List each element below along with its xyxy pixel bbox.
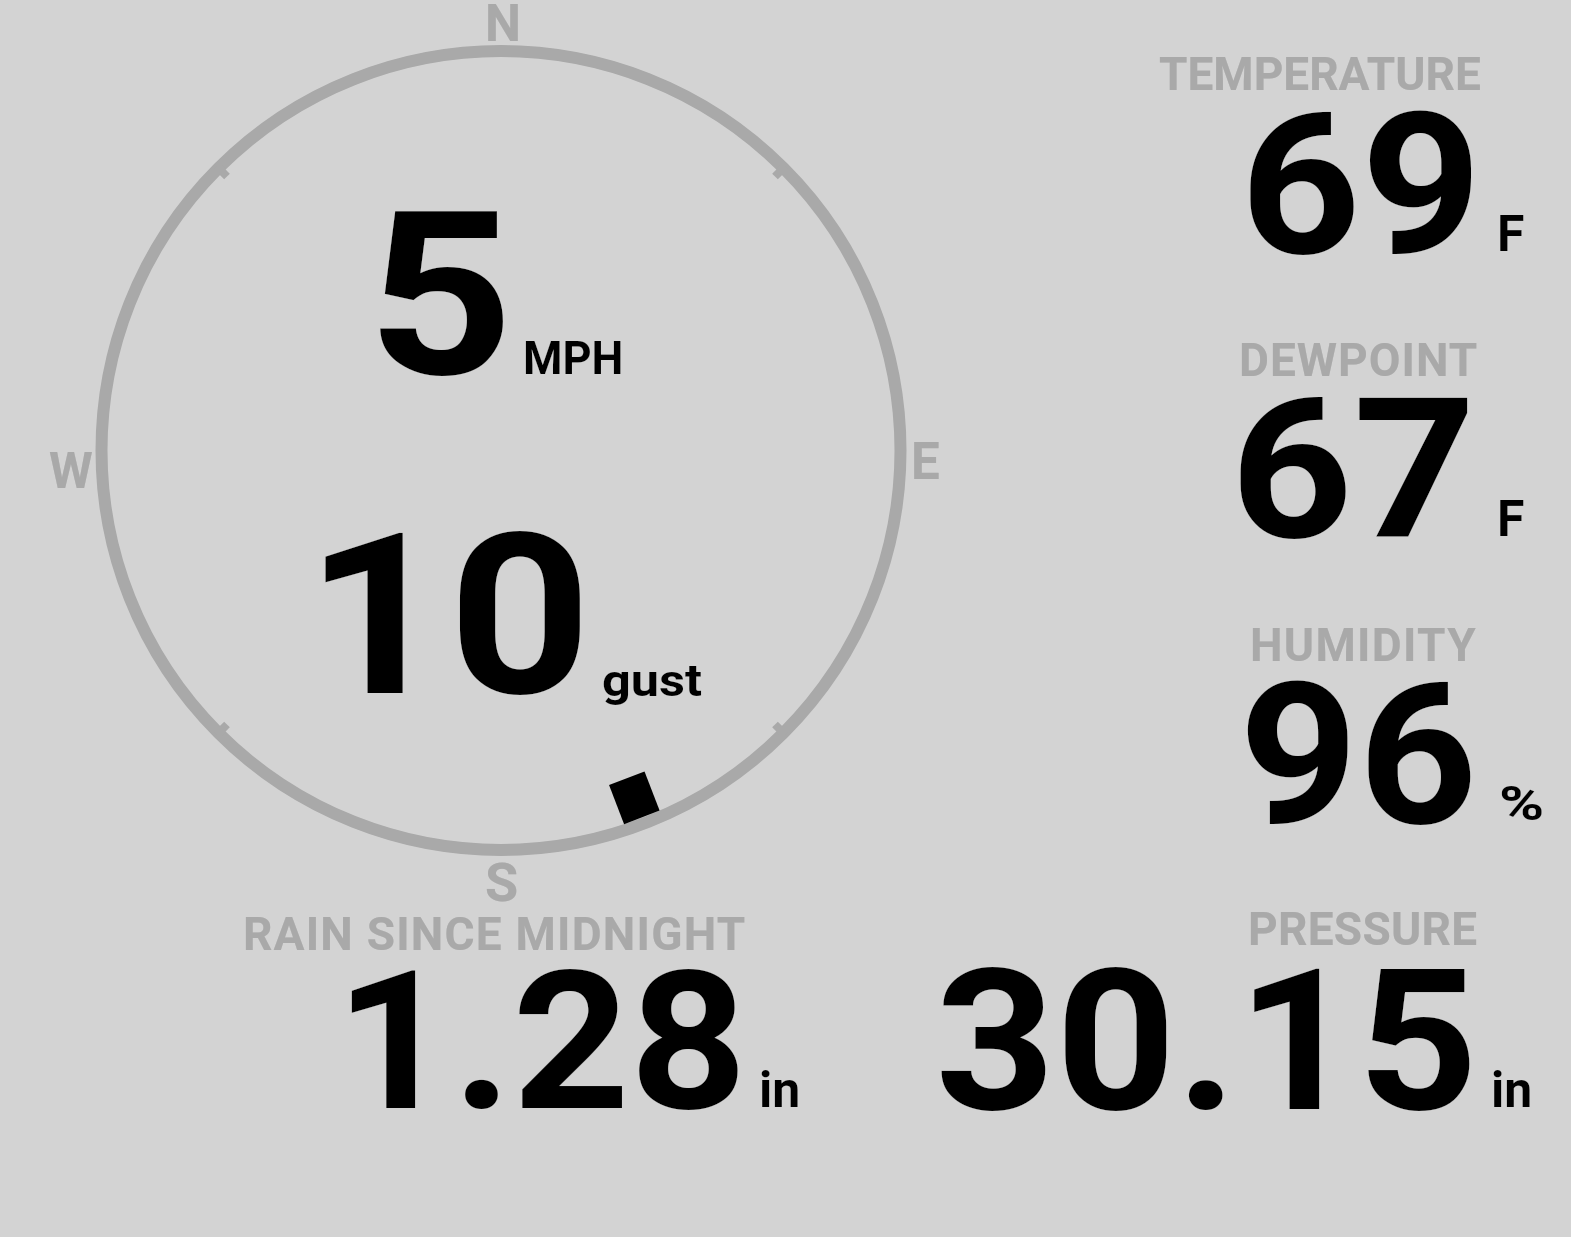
- button[interactable]: Wind speed and direction: [40, 0, 960, 910]
- staticText: in: [1491, 1061, 1533, 1120]
- staticText: DEWPOINT: [1239, 333, 1479, 387]
- staticText: in: [759, 1061, 801, 1120]
- staticText: TEMPERATURE: [1159, 47, 1481, 101]
- staticText: gust: [602, 654, 703, 707]
- staticText: E: [911, 432, 940, 492]
- staticText: F: [1497, 490, 1525, 549]
- button[interactable]: Dewpoint 67 degrees Fahrenheit: [1120, 325, 1560, 555]
- staticText: 1.28: [335, 929, 748, 1155]
- button[interactable]: Humidity 96 percent: [1120, 610, 1560, 840]
- staticText: MPH: [523, 331, 624, 385]
- staticText: N: [485, 0, 522, 54]
- button[interactable]: Rain since midnight 1.28 inches: [200, 900, 820, 1130]
- staticText: HUMIDITY: [1250, 618, 1477, 672]
- staticText: 10: [305, 485, 593, 748]
- staticText: S: [485, 851, 519, 914]
- staticText: F: [1497, 205, 1525, 264]
- staticText: %: [1499, 775, 1545, 832]
- staticText: RAIN SINCE MIDNIGHT: [243, 907, 747, 961]
- staticText: 67: [1230, 357, 1476, 584]
- button[interactable]: Temperature 69 degrees Fahrenheit: [1120, 40, 1560, 270]
- staticText: 96: [1239, 640, 1478, 871]
- staticText: W: [49, 442, 93, 501]
- button[interactable]: Pressure 30.15 inches: [880, 895, 1560, 1130]
- staticText: PRESSURE: [1248, 902, 1478, 956]
- staticText: 69: [1240, 71, 1482, 301]
- staticText: 30.15: [935, 926, 1479, 1157]
- staticText: 5: [367, 162, 514, 429]
